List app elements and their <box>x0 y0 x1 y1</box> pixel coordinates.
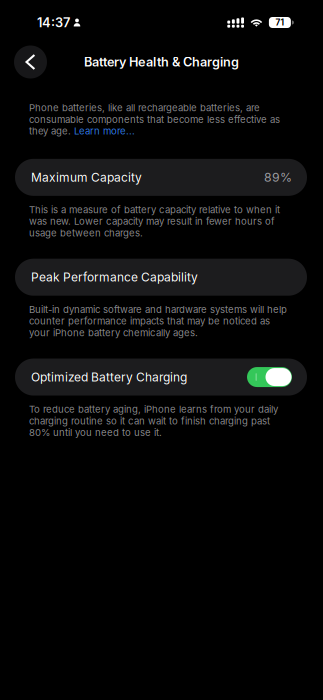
staticText: Learn more... <box>74 125 135 137</box>
staticText: 89% <box>264 170 292 185</box>
button[interactable]: Learn more... <box>74 125 135 137</box>
staticText: 71 <box>275 17 284 27</box>
staticText: Battery Health & Charging <box>84 54 239 70</box>
staticText: 14:37 <box>37 15 70 30</box>
button[interactable]: Optimized Battery Charging <box>0 358 307 395</box>
staticText: they age. <box>29 125 74 137</box>
staticText: Built-in dynamic software and hardware s… <box>29 304 287 338</box>
staticText: Phone batteries, like all rechargeable b… <box>29 102 260 114</box>
button[interactable]: Peak Performance Capability <box>0 259 307 296</box>
staticText: This is a measure of battery capacity re… <box>29 204 280 239</box>
button[interactable]: Back <box>14 45 47 78</box>
staticText: Maximum Capacity <box>31 170 142 185</box>
staticText: consumable components that become less e… <box>29 114 280 125</box>
staticText: Optimized Battery Charging <box>31 370 187 384</box>
staticText: Peak Performance Capability <box>31 270 198 284</box>
button[interactable]: Maximum Capacity <box>0 159 307 196</box>
staticText: To reduce battery aging, iPhone learns f… <box>29 403 278 438</box>
